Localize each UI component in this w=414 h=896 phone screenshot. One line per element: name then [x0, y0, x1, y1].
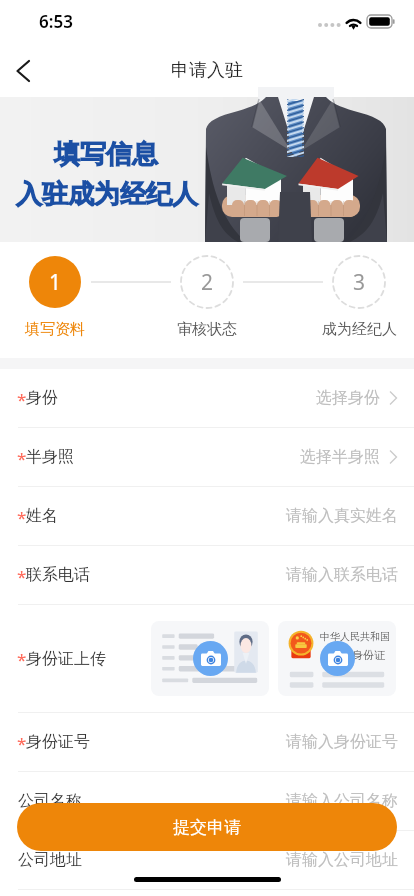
button[interactable]: 公司名称 — [0, 772, 414, 830]
staticText: 公司名称 — [18, 791, 82, 811]
staticText: 姓名 — [26, 506, 58, 526]
staticText: 请输入公司名称 — [286, 791, 398, 811]
staticText: 请输入身份证号 — [286, 732, 398, 752]
staticText: 请输入联系电话 — [286, 565, 398, 585]
button[interactable]: * — [0, 428, 414, 486]
staticText: 2 — [201, 268, 214, 297]
staticText: * — [17, 732, 25, 755]
staticText: 身份 — [26, 388, 58, 408]
staticText: 身份证号 — [26, 732, 90, 752]
button[interactable]: Back — [0, 48, 46, 94]
button[interactable]: * — [0, 369, 414, 427]
staticText: 填写资料 — [25, 320, 85, 339]
staticText: * — [17, 648, 25, 671]
staticText: 3 — [353, 268, 366, 297]
staticText: 6:53 — [39, 10, 73, 33]
staticText: 中华人民共和国 — [320, 630, 390, 643]
staticText: 半身照 — [26, 447, 74, 467]
button[interactable]: * — [0, 713, 414, 771]
staticText: 请输入真实姓名 — [286, 506, 398, 526]
staticText: 1 — [49, 268, 62, 297]
staticText: 公司地址 — [18, 850, 82, 870]
staticText: 提交申请 — [173, 817, 241, 838]
button[interactable]: * — [0, 546, 414, 604]
button[interactable]: 上传身份证国徽面 — [278, 621, 396, 696]
staticText: 填写信息 — [54, 138, 158, 171]
staticText: 成为经纪人 — [322, 320, 397, 339]
staticText: 居民身份证 — [330, 648, 385, 662]
staticText: * — [17, 506, 25, 529]
staticText: 选择身份 — [316, 388, 380, 408]
button[interactable]: * — [0, 487, 414, 545]
staticText: 选择半身照 — [300, 447, 380, 467]
button[interactable]: 提交申请 — [17, 803, 397, 851]
staticText: 请输入公司地址 — [286, 850, 398, 870]
button[interactable]: 上传身份证人像面 — [151, 621, 269, 696]
staticText: * — [17, 447, 25, 470]
staticText: * — [17, 565, 25, 588]
staticText: 入驻成为经纪人 — [16, 178, 198, 211]
staticText: 申请入驻 — [171, 59, 243, 82]
staticText: * — [17, 388, 25, 411]
staticText: 审核状态 — [177, 320, 237, 339]
staticText: 身份证上传 — [26, 649, 106, 669]
button[interactable]: 公司地址 — [0, 831, 414, 889]
staticText: 联系电话 — [26, 565, 90, 585]
